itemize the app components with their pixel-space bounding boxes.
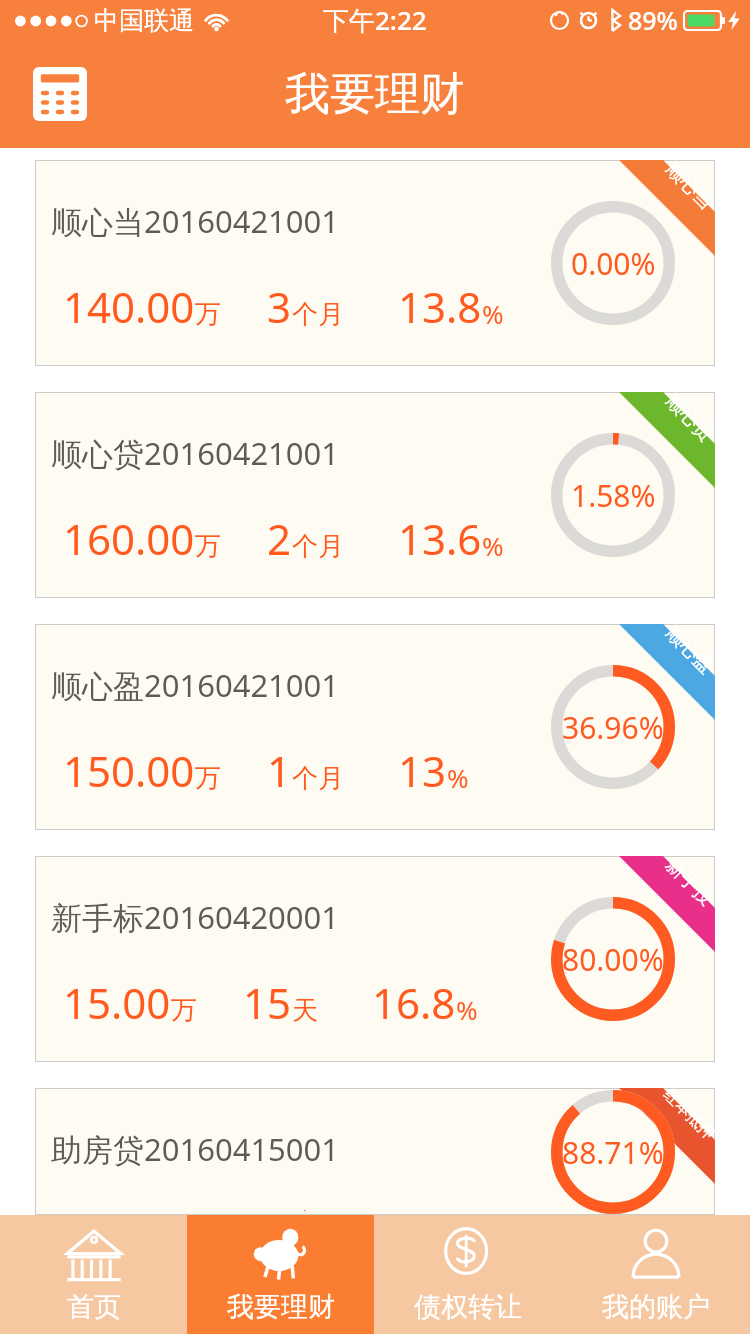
staticText: 首页 [67, 1290, 121, 1324]
staticText: % [482, 296, 504, 331]
staticText: 天 [292, 994, 318, 1027]
staticText: 顺心贷20160421001 [51, 432, 340, 474]
staticText: 1 [267, 742, 292, 799]
staticText: 6 [267, 1206, 292, 1215]
staticText: 顺心贷 [661, 392, 715, 447]
staticText: 个月 [292, 1206, 344, 1211]
staticText: 顺心当 [661, 160, 715, 215]
button[interactable]: 顺心盈 [35, 624, 715, 830]
staticText: 80.00% [562, 939, 664, 980]
button[interactable]: 顺心当 [35, 160, 715, 366]
staticText: 万 [195, 298, 221, 331]
staticText: 160.00 [63, 510, 195, 567]
staticText: 助房贷20160415001 [51, 1128, 340, 1170]
staticText: 0.00% [571, 243, 656, 284]
staticText: 中国联通 [94, 5, 194, 36]
button[interactable]: 新手投 [35, 856, 715, 1062]
staticText: 150.00 [63, 742, 195, 799]
staticText: 89% [628, 3, 678, 37]
staticText: 16.8 [372, 974, 456, 1031]
button[interactable]: 我的账户 [562, 1215, 750, 1334]
button[interactable]: 红本抵押 [35, 1088, 715, 1215]
staticText: 顺心盈20160421001 [51, 664, 340, 706]
staticText: 13.8 [398, 1206, 482, 1215]
staticText: 我的账户 [602, 1290, 710, 1324]
staticText: 万 [195, 762, 221, 795]
staticText: 3 [267, 278, 292, 335]
staticText: 新手标20160420001 [51, 896, 340, 938]
staticText: % [447, 760, 469, 795]
staticText: 个月 [292, 298, 344, 331]
staticText: 2 [267, 510, 292, 567]
staticText: % [456, 992, 478, 1027]
staticText: 下午2:22 [323, 2, 427, 38]
staticText: 13.8 [398, 278, 482, 335]
staticText: 顺心盈 [661, 624, 715, 679]
staticText: 13.6 [398, 510, 482, 567]
staticText: 新手投 [661, 856, 715, 911]
staticText: 15 [243, 974, 292, 1031]
staticText: 个月 [292, 530, 344, 563]
staticText: 红本抵押 [659, 1088, 715, 1144]
staticText: 我要理财 [227, 1290, 335, 1324]
button[interactable]: 我要理财 [187, 1215, 374, 1334]
staticText: 140.00 [63, 278, 195, 335]
staticText: 万 [195, 530, 221, 563]
button[interactable]: 首页 [0, 1215, 187, 1334]
staticText: 88.71% [562, 1132, 664, 1173]
button[interactable]: Calculator [30, 64, 90, 124]
button[interactable]: 债权转让 [374, 1215, 562, 1334]
staticText: 顺心当20160421001 [51, 200, 340, 242]
staticText: 万 [171, 994, 197, 1027]
staticText: 13 [398, 742, 447, 799]
staticText: 个月 [292, 762, 344, 795]
staticText: 36.96% [562, 707, 664, 748]
staticText: 100.00 [63, 1206, 195, 1215]
staticText: 我要理财 [285, 66, 465, 123]
staticText: 1.58% [571, 475, 656, 516]
staticText: % [482, 528, 504, 563]
staticText: 15.00 [63, 974, 171, 1031]
staticText: 债权转让 [414, 1290, 522, 1324]
button[interactable]: 顺心贷 [35, 392, 715, 598]
